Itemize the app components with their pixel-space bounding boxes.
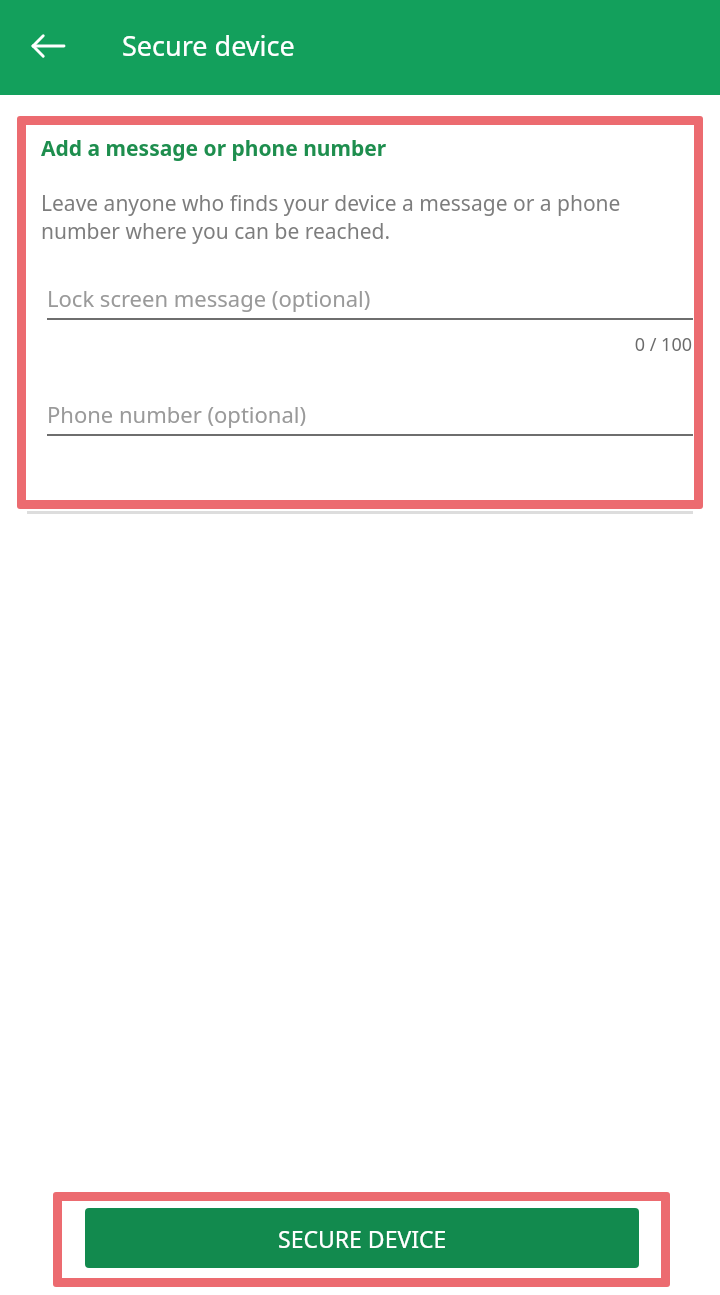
button[interactable]: Phone number (optional) <box>47 391 693 436</box>
staticText: Add a message or phone number <box>41 134 387 163</box>
staticText: 0 / 100 <box>26 332 692 357</box>
button[interactable]: Back <box>18 16 78 76</box>
button[interactable]: Add a message or phone number <box>26 125 694 500</box>
staticText: Secure device <box>122 27 295 64</box>
button[interactable]: SECURE DEVICE <box>85 1208 639 1268</box>
staticText: Phone number (optional) <box>47 399 307 429</box>
staticText: Lock screen message (optional) <box>47 283 371 313</box>
button[interactable]: Lock screen message (optional) <box>47 275 693 320</box>
staticText: SECURE DEVICE <box>278 1223 447 1254</box>
staticText: Leave anyone who finds your device a mes… <box>41 189 680 245</box>
